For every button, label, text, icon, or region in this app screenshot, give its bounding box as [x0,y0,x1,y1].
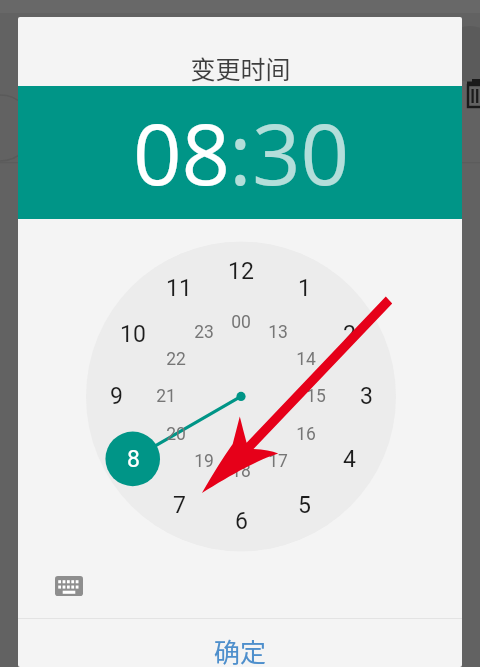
staticText: 5 [298,492,311,519]
button[interactable]: 12 [219,254,263,288]
staticText: 00 [231,312,251,333]
button[interactable]: 00 [223,309,259,335]
button[interactable]: 19 [186,448,222,474]
button[interactable]: 30 [252,94,344,190]
button[interactable]: 18 [223,458,259,484]
button[interactable]: Switch to text input [49,570,89,602]
button[interactable]: 7 [157,488,201,522]
staticText: 7 [173,492,186,519]
button[interactable]: 16 [288,421,324,447]
button[interactable]: 6 [219,504,263,538]
staticText: 1 [298,275,311,302]
button[interactable]: 15 [298,383,334,409]
button[interactable]: 14 [288,346,324,372]
button[interactable]: 10 [111,317,155,351]
button[interactable]: 21 [148,383,184,409]
staticText: 30 [252,94,344,190]
button[interactable]: 17 [260,448,296,474]
button[interactable]: 23 [186,319,222,345]
staticText: 22 [166,349,186,370]
staticText: 9 [110,383,123,410]
staticText: 13 [268,322,288,343]
staticText: 确定 [214,632,267,667]
staticText: : [229,94,249,190]
staticText: 20 [166,424,186,445]
staticText: 变更时间 [190,50,291,86]
staticText: 11 [166,275,192,302]
button[interactable]: 确定 [18,627,462,667]
staticText: 3 [360,383,373,410]
staticText: 10 [120,321,146,348]
staticText: 14 [296,349,316,370]
staticText: 2 [343,321,356,348]
staticText: 8 [127,446,140,473]
staticText: 16 [296,424,316,445]
staticText: 15 [306,386,326,407]
staticText: 21 [156,386,176,407]
staticText: 12 [228,258,254,285]
staticText: 19 [194,451,214,472]
staticText: 18 [231,461,251,482]
staticText: 6 [235,508,248,535]
button[interactable]: 8 [111,442,155,476]
button[interactable]: 11 [157,271,201,305]
button[interactable]: 9 [94,379,138,413]
button[interactable]: 22 [158,346,194,372]
button[interactable]: 1 [282,271,326,305]
staticText: 4 [343,446,356,473]
button[interactable]: 4 [327,442,371,476]
button[interactable]: 13 [260,319,296,345]
button[interactable]: 08 [133,94,225,190]
button[interactable]: 3 [344,379,388,413]
button[interactable]: 2 [327,317,371,351]
staticText: 23 [194,322,214,343]
button[interactable]: 20 [158,421,194,447]
staticText: 08 [133,94,225,190]
staticText: 17 [268,451,288,472]
button[interactable]: 5 [282,488,326,522]
